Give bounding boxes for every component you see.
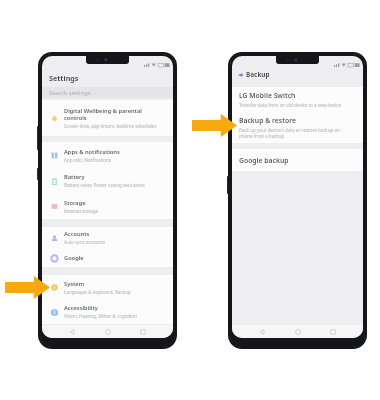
staticText: Languages & keyboard, Backup	[64, 289, 131, 295]
button[interactable]: Recents	[327, 326, 339, 338]
button[interactable]: Storage	[42, 193, 173, 219]
button[interactable]: Apps & notifications	[42, 142, 173, 168]
staticText: System	[64, 280, 85, 288]
button[interactable]: Home	[102, 326, 114, 338]
staticText: Transfer data from an old device to a ne…	[239, 102, 341, 108]
button[interactable]: Google	[42, 248, 173, 267]
button[interactable]: Home	[292, 326, 304, 338]
button[interactable]: Backup & restore	[232, 111, 363, 143]
staticText: Google	[64, 254, 84, 262]
staticText: Auto-sync accounts	[64, 239, 105, 245]
staticText: LG Mobile Switch	[239, 91, 296, 100]
button[interactable]: Digital Wellbeing & parental controls	[42, 107, 173, 129]
staticText: Back up your device's data or restore ba…	[239, 127, 340, 139]
staticText: Vision, Hearing, Motor & cognition	[64, 313, 137, 319]
button[interactable]: Back	[235, 70, 244, 79]
button[interactable]: Accounts	[42, 227, 173, 248]
button[interactable]: System	[42, 275, 173, 299]
staticText: Search settings	[49, 89, 91, 97]
staticText: Accounts	[64, 230, 90, 238]
staticText: Backup	[246, 70, 270, 79]
button[interactable]: Google backup	[232, 149, 363, 171]
staticText: Google backup	[239, 156, 289, 165]
staticText: Battery saver, Power saving exclusions	[64, 182, 145, 188]
staticText: Backup & restore	[239, 116, 296, 125]
button[interactable]: LG Mobile Switch	[232, 87, 363, 111]
button[interactable]: Recents	[137, 326, 149, 338]
staticText: Storage	[64, 199, 86, 207]
staticText: Accessibility	[64, 304, 98, 312]
staticText: Battery	[64, 173, 85, 181]
staticText: Apps & notifications	[64, 148, 120, 156]
button[interactable]: Accessibility	[42, 299, 173, 324]
button[interactable]: Back	[66, 326, 78, 338]
staticText: App info, Notifications	[64, 157, 111, 163]
button[interactable]: Back	[256, 326, 268, 338]
staticText: Screen time, app timers, bedtime schedul…	[64, 123, 157, 129]
button[interactable]: Battery	[42, 168, 173, 193]
staticText: Internal storage	[64, 208, 99, 214]
staticText: Settings	[49, 73, 79, 83]
staticText: Digital Wellbeing & parental controls	[64, 107, 142, 122]
